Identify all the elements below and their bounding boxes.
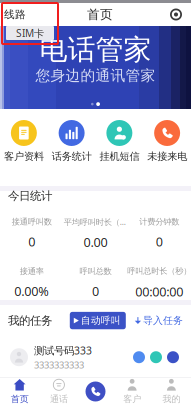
button[interactable]: 线路 <box>0 3 30 26</box>
staticText: 测试号码333 <box>34 343 92 357</box>
staticText: 平均呼叫时长（秒） <box>64 216 127 227</box>
staticText: 首页 <box>11 393 29 405</box>
staticText: 计费分钟数 <box>139 217 179 227</box>
staticText: 呼叫总时长（秒） <box>127 266 191 277</box>
button[interactable]: 测试号码333 <box>0 343 191 371</box>
button[interactable]: 客户 <box>112 377 152 406</box>
staticText: 话务统计 <box>52 150 92 163</box>
button[interactable]: 导入任务 <box>135 314 183 327</box>
staticText: 导入任务 <box>143 314 183 327</box>
staticText: 通话 <box>50 393 68 405</box>
staticText: 0 <box>28 233 35 250</box>
staticText: 0.00 <box>83 233 107 251</box>
staticText: 您身边的通讯管家 <box>35 66 155 85</box>
staticText: 我的 <box>162 393 180 405</box>
staticText: 呼叫总数 <box>79 266 111 277</box>
button[interactable]: Settings <box>170 3 191 26</box>
staticText: 00:00:00 <box>135 283 183 300</box>
button[interactable]: 我的 <box>152 377 191 406</box>
button[interactable]: SIM卡 <box>6 26 54 40</box>
button[interactable]: 未接来电 <box>143 120 191 163</box>
staticText: 电话管家 <box>39 32 151 67</box>
button[interactable]: 客户资料 <box>0 120 48 163</box>
button[interactable]: Call <box>85 381 105 401</box>
staticText: 线路 <box>4 8 26 21</box>
staticText: 首页 <box>87 6 113 22</box>
staticText: 0 <box>92 283 99 300</box>
staticText: 自动呼叫 <box>81 314 121 327</box>
staticText: 挂机短信 <box>99 150 139 163</box>
staticText: 0.00% <box>14 283 49 300</box>
staticText: 客户资料 <box>4 150 44 163</box>
button[interactable]: 挂机短信 <box>95 120 143 163</box>
staticText: 3333333333 <box>34 358 84 371</box>
button[interactable]: 自动呼叫 <box>70 312 126 329</box>
staticText: 今日统计 <box>8 189 52 203</box>
button[interactable]: 话务统计 <box>48 120 96 163</box>
staticText: 客户 <box>123 393 141 405</box>
button[interactable]: 首页 <box>0 377 39 406</box>
staticText: 0 <box>156 233 163 250</box>
button[interactable]: 通话 <box>39 377 78 406</box>
staticText: SIM卡 <box>16 26 44 40</box>
staticText: 我的任务 <box>8 313 52 328</box>
staticText: 接通呼叫数 <box>12 217 52 227</box>
staticText: 未接来电 <box>147 150 187 163</box>
staticText: 接通率 <box>20 266 44 277</box>
